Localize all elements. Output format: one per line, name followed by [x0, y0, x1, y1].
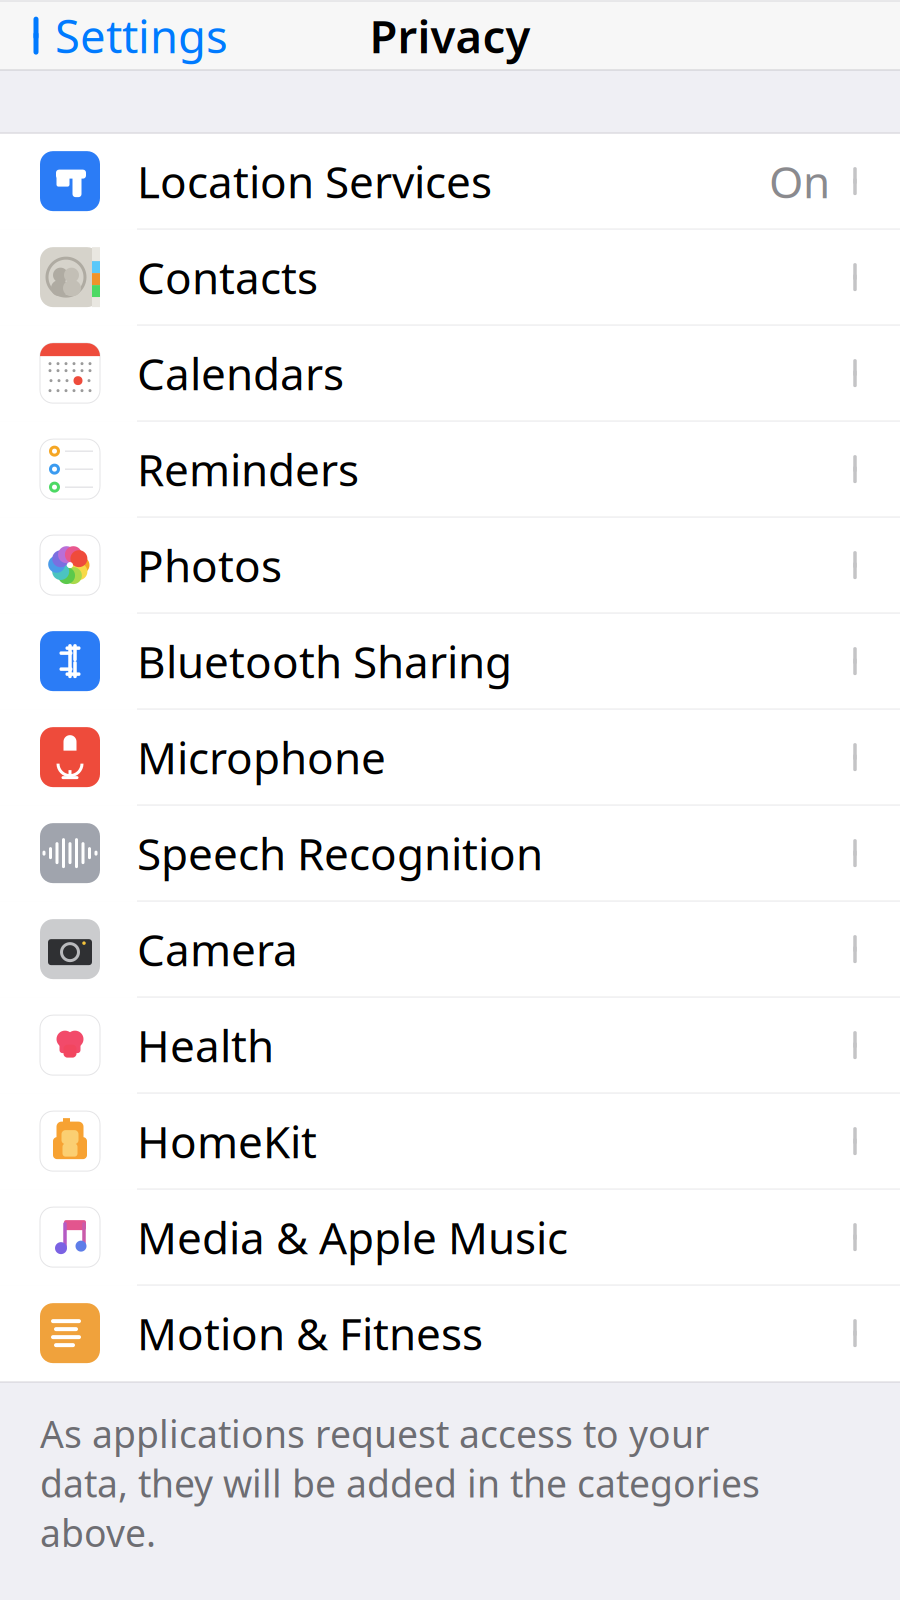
button[interactable]: Contacts	[0, 230, 900, 326]
button[interactable]: Calendars	[0, 326, 900, 422]
button[interactable]: Microphone	[0, 710, 900, 806]
staticText: Privacy	[369, 5, 530, 66]
staticText: Health	[137, 1016, 274, 1074]
staticText: Photos	[137, 536, 282, 594]
staticText: Location Services	[137, 152, 492, 210]
staticText: Settings	[55, 5, 228, 66]
button[interactable]: Bluetooth Sharing	[0, 614, 900, 710]
button[interactable]: Media & Apple Music	[0, 1190, 900, 1286]
staticText: Calendars	[137, 344, 344, 402]
staticText: Bluetooth Sharing	[137, 632, 512, 690]
staticText: Camera	[137, 920, 298, 978]
button[interactable]: Camera	[0, 902, 900, 998]
button[interactable]: Photos	[0, 518, 900, 614]
button[interactable]: Health	[0, 998, 900, 1094]
staticText: Media & Apple Music	[137, 1208, 568, 1266]
staticText: HomeKit	[137, 1112, 317, 1170]
staticText: Contacts	[137, 248, 318, 306]
button[interactable]: Location Services	[0, 134, 900, 230]
button[interactable]: Motion & Fitness	[0, 1286, 900, 1382]
button[interactable]: Reminders	[0, 422, 900, 518]
button[interactable]: HomeKit	[0, 1094, 900, 1190]
staticText: Reminders	[137, 440, 359, 498]
staticText: Microphone	[137, 728, 386, 786]
staticText: Motion & Fitness	[137, 1304, 483, 1362]
staticText: As applications request access to your d…	[40, 1409, 760, 1557]
button[interactable]: Settings	[0, 0, 228, 74]
staticText: Speech Recognition	[137, 824, 543, 882]
button[interactable]: Speech Recognition	[0, 806, 900, 902]
staticText: On	[769, 152, 830, 210]
